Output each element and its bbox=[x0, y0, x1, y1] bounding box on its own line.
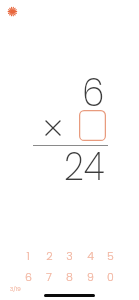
button[interactable]: 0 bbox=[101, 267, 119, 285]
staticText: 0 bbox=[107, 269, 114, 284]
staticText: 6 bbox=[25, 269, 32, 284]
button[interactable]: Multiply bbox=[44, 119, 62, 137]
staticText: 4 bbox=[87, 248, 94, 263]
staticText: 3 bbox=[66, 248, 73, 263]
button[interactable]: 3/19 bbox=[7, 284, 23, 294]
button[interactable]: 6 bbox=[19, 267, 37, 285]
staticText: 8 bbox=[66, 269, 73, 284]
button[interactable]: Hint bbox=[4, 3, 21, 20]
staticText: 6 bbox=[82, 64, 104, 120]
button[interactable]: 7 bbox=[40, 267, 58, 285]
staticText: 24 bbox=[64, 138, 105, 194]
button[interactable]: 9 bbox=[81, 267, 99, 285]
staticText: 2 bbox=[46, 248, 53, 263]
button[interactable]: 4 bbox=[81, 246, 99, 264]
button[interactable]: 3 bbox=[60, 246, 78, 264]
button[interactable]: 2 bbox=[40, 246, 58, 264]
button[interactable]: Answer bbox=[79, 110, 106, 141]
staticText: 9 bbox=[87, 269, 94, 284]
button[interactable]: 1 bbox=[19, 246, 37, 264]
button[interactable]: 5 bbox=[101, 246, 119, 264]
staticText: 1 bbox=[26, 248, 30, 263]
button[interactable]: 8 bbox=[60, 267, 78, 285]
staticText: 3/19 bbox=[10, 285, 21, 293]
staticText: 7 bbox=[46, 269, 52, 284]
staticText: 5 bbox=[107, 248, 114, 263]
